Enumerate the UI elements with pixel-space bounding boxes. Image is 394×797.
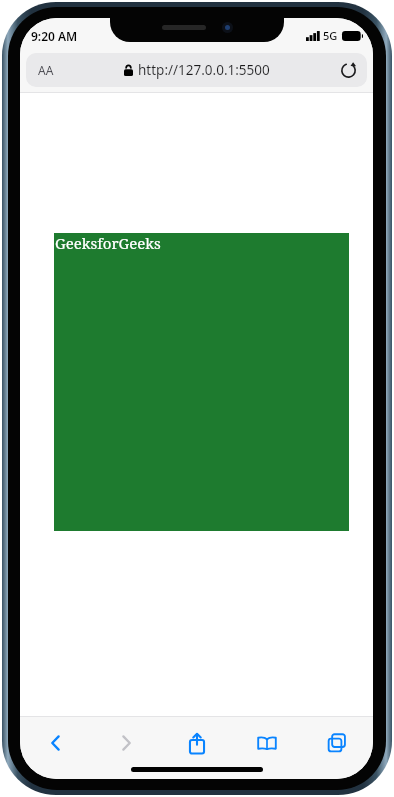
staticText: AA bbox=[38, 62, 54, 78]
staticText: 5G bbox=[323, 28, 338, 43]
staticText: 9:20 AM bbox=[31, 28, 78, 44]
staticText: http://127.0.0.1:5500 bbox=[138, 61, 270, 79]
button[interactable]: Back bbox=[34, 721, 78, 765]
button[interactable]: Tabs bbox=[315, 721, 359, 765]
button[interactable]: Reload bbox=[334, 56, 362, 84]
button[interactable]: Bookmarks bbox=[245, 721, 289, 765]
button[interactable]: Share bbox=[175, 721, 219, 765]
staticText: GeeksforGeeks bbox=[55, 233, 161, 253]
button[interactable]: AA bbox=[26, 53, 367, 87]
button[interactable]: Forward bbox=[104, 721, 148, 765]
